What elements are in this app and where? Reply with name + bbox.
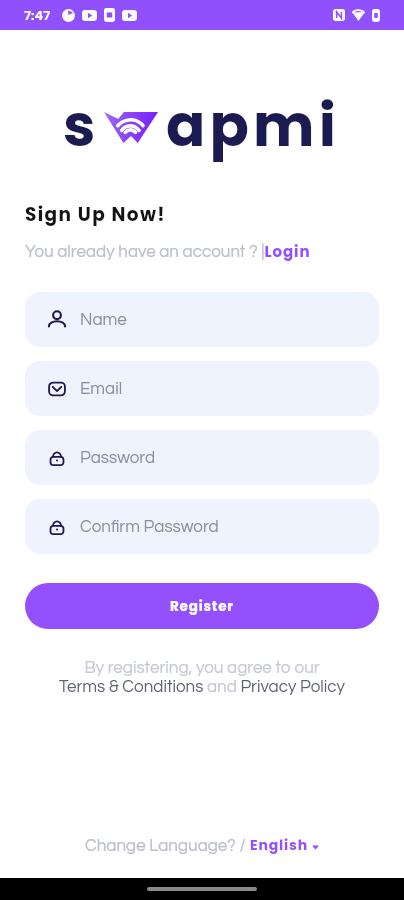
staticText: By registering, you agree to our (0, 659, 404, 677)
other: swapmi logo (104, 112, 158, 143)
button[interactable]: Password (25, 430, 379, 485)
button[interactable]: Register (25, 583, 379, 629)
staticText: Confirm Password (80, 518, 219, 536)
button[interactable]: Sign Up Now! (25, 202, 166, 228)
staticText: Name (80, 311, 127, 329)
staticText: s (63, 85, 96, 166)
staticText: Password (80, 449, 156, 467)
button[interactable]: Email (25, 361, 379, 416)
staticText: Change Language? / (85, 837, 250, 855)
button[interactable]: You already have an account ? |Login (25, 241, 311, 262)
button[interactable]: Confirm Password (25, 499, 379, 554)
staticText: 7:47 (24, 6, 51, 24)
staticText: Email (80, 380, 123, 398)
staticText: apmi (166, 85, 341, 166)
button[interactable]: English (250, 835, 308, 855)
staticText: Terms & Conditions and Privacy Policy (0, 678, 404, 696)
staticText: Register (170, 597, 234, 616)
button[interactable]: Name (25, 292, 379, 347)
